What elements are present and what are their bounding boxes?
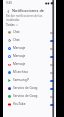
staticText: Servicio de Goog [13, 86, 50, 90]
button[interactable]: Toggle [50, 46, 55, 51]
button[interactable]: Mensaje [8, 44, 55, 52]
button[interactable]: Chat [8, 28, 55, 36]
button[interactable]: Samsung P [8, 76, 55, 84]
button[interactable]: Mensaje [8, 52, 55, 60]
button[interactable]: Toggle [50, 94, 55, 99]
staticText: 9:30 [6, 1, 12, 5]
button[interactable]: Toggle [50, 30, 55, 35]
button[interactable]: Back [5, 8, 11, 14]
button[interactable]: Chat [8, 36, 55, 44]
staticText: Recibir notificaciones de las aplicacion… [6, 14, 54, 18]
staticText: Mensaje [13, 62, 50, 66]
button[interactable]: Toggle [50, 86, 55, 91]
staticText: Todas [6, 23, 15, 27]
staticText: Mensaje [13, 46, 50, 50]
button[interactable]: Toggle [50, 38, 55, 43]
button[interactable]: Toggle [50, 62, 55, 67]
staticText: Chat [13, 30, 50, 34]
staticText: Mensaje [13, 54, 50, 58]
button[interactable]: Toggle [50, 78, 55, 83]
staticText: Samsung P [13, 78, 50, 82]
button[interactable]: Servicio de Goog [8, 92, 55, 100]
button[interactable]: Toggle [50, 102, 55, 107]
staticText: instaladas [6, 18, 20, 22]
staticText: Mi archivo [13, 70, 50, 74]
button[interactable]: YouTube [8, 100, 55, 108]
button[interactable]: Todas [6, 22, 56, 28]
staticText: Servicio de Goog [13, 94, 50, 98]
button[interactable]: Toggle [50, 70, 55, 75]
staticText: Chat [13, 38, 50, 42]
staticText: YouTube [13, 102, 50, 106]
button[interactable]: Servicio de Goog [8, 84, 55, 92]
button[interactable]: Toggle [50, 54, 55, 59]
button[interactable]: Mi archivo [8, 68, 55, 76]
button[interactable]: Mensaje [8, 60, 55, 68]
staticText: Notificaciones de aplicaciones [12, 8, 56, 13]
